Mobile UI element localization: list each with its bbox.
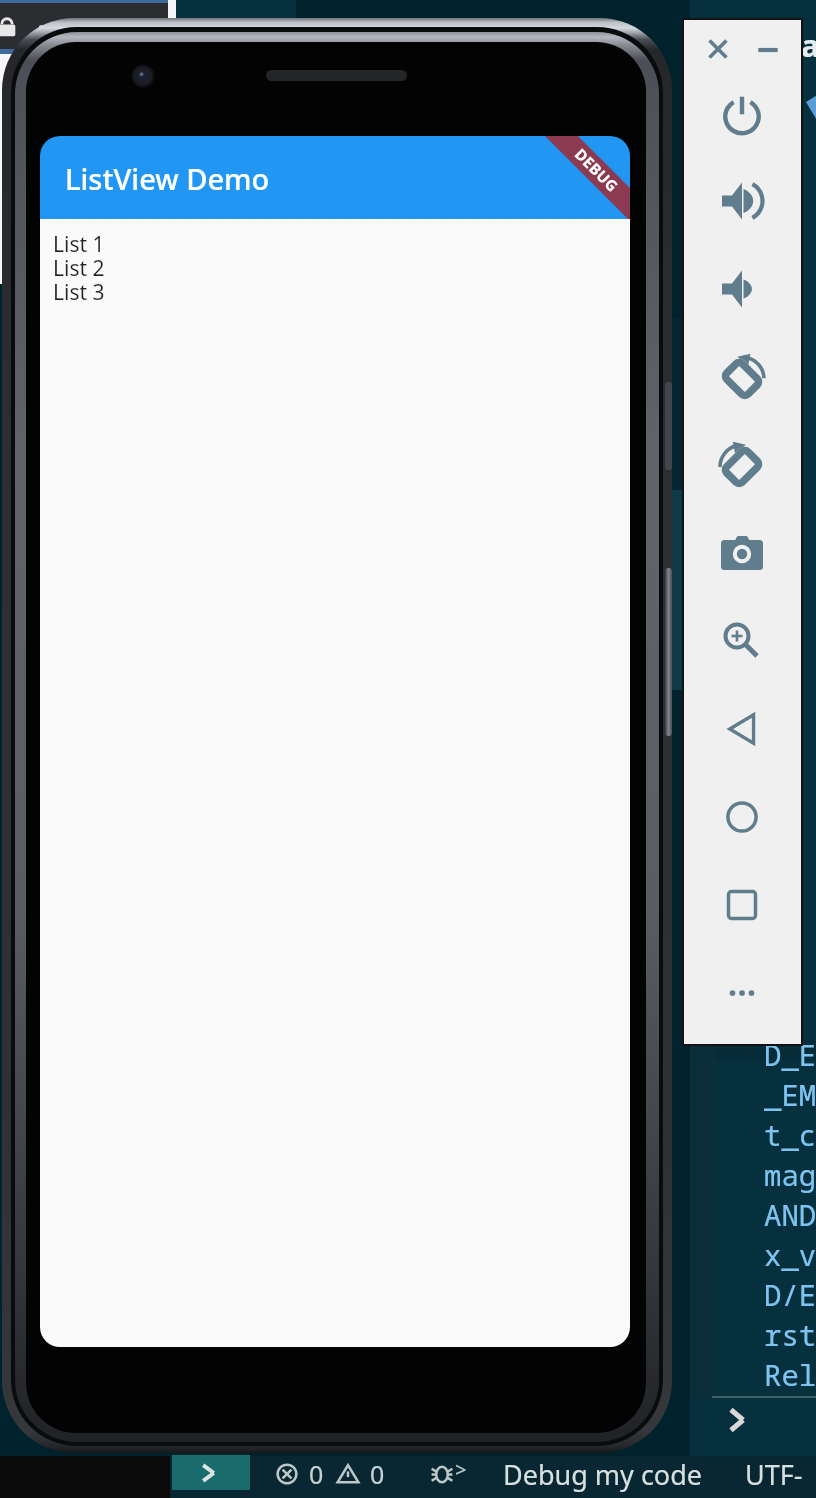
- staticText: rst: [764, 1315, 816, 1354]
- button[interactable]: Zoom: [715, 614, 769, 668]
- staticText: AND: [764, 1195, 816, 1234]
- button[interactable]: Screenshot: [715, 526, 769, 580]
- button[interactable]: Volume down: [715, 262, 769, 316]
- button[interactable]: Debug: [429, 1461, 455, 1487]
- button[interactable]: Debug my code: [503, 1456, 703, 1492]
- staticText: DEBUG: [571, 144, 623, 196]
- staticText: x_v: [764, 1235, 816, 1274]
- staticText: D_E: [764, 1035, 816, 1074]
- button[interactable]: Home: [715, 790, 769, 844]
- button[interactable]: Recents: [715, 878, 769, 932]
- button[interactable]: List 3: [53, 278, 253, 302]
- staticText: ListView Demo: [65, 159, 270, 198]
- staticText: >: [455, 1456, 467, 1483]
- button[interactable]: Back: [715, 702, 769, 756]
- button[interactable]: Warnings: [335, 1461, 361, 1487]
- staticText: mag: [764, 1155, 816, 1194]
- staticText: ai: [801, 24, 816, 66]
- staticText: activity_main.xml: [36, 10, 263, 48]
- button[interactable]: Power: [715, 86, 769, 140]
- staticText: 0: [309, 1457, 324, 1491]
- staticText: Rel: [764, 1355, 816, 1394]
- button[interactable]: More: [715, 966, 769, 1020]
- staticText: _EM: [764, 1075, 816, 1114]
- button[interactable]: Run: [712, 1398, 816, 1454]
- button[interactable]: List 2: [53, 254, 253, 278]
- button[interactable]: Rotate left: [715, 350, 769, 404]
- button[interactable]: Volume up: [715, 174, 769, 228]
- staticText: List 3: [53, 278, 105, 302]
- button[interactable]: Close: [700, 31, 736, 67]
- staticText: List 1: [53, 230, 105, 254]
- button[interactable]: Rotate right: [715, 438, 769, 492]
- staticText: 0: [370, 1457, 385, 1491]
- button[interactable]: ListView Demo: [40, 136, 630, 219]
- staticText: D/E: [764, 1275, 816, 1314]
- staticText: Debug my code: [503, 1456, 703, 1492]
- staticText: t_c: [764, 1115, 816, 1154]
- staticText: List 2: [53, 254, 105, 278]
- button[interactable]: Volume button: [665, 568, 672, 736]
- button[interactable]: Minimize: [750, 32, 786, 68]
- button[interactable]: List 1: [53, 230, 253, 254]
- button[interactable]: Errors: [274, 1461, 300, 1487]
- button[interactable]: Terminal: [172, 1455, 250, 1490]
- staticText: UTF-: [745, 1456, 803, 1492]
